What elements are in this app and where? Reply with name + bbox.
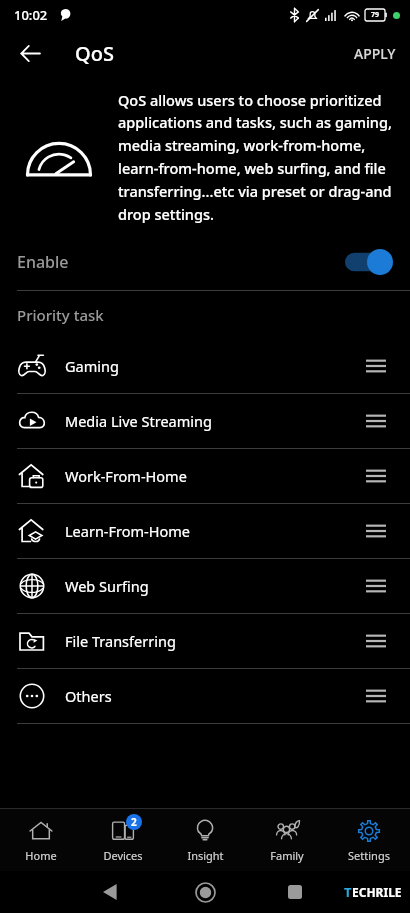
staticText: 10:02 xyxy=(14,6,48,24)
button[interactable]: Family xyxy=(246,809,328,871)
button[interactable]: Learn-From-Home xyxy=(0,504,410,558)
staticText: QoS xyxy=(75,40,114,67)
staticText: ECHRILE xyxy=(352,884,402,900)
staticText: Home xyxy=(25,848,57,863)
button[interactable]: Reorder File Transferring xyxy=(359,624,393,658)
staticText: Media Live Streaming xyxy=(65,411,212,431)
button[interactable]: Reorder Others xyxy=(359,679,393,713)
staticText: Priority task xyxy=(17,305,104,325)
other: Back xyxy=(103,884,119,900)
staticText: Enable xyxy=(17,251,69,273)
button[interactable]: File Transferring xyxy=(0,614,410,668)
staticText: Learn-From-Home xyxy=(65,521,191,541)
staticText: 79 xyxy=(371,10,380,20)
staticText: Web Surfing xyxy=(65,576,149,596)
button[interactable]: Insight xyxy=(164,809,246,871)
staticText: Family xyxy=(270,848,304,863)
button[interactable]: Enable xyxy=(0,234,410,290)
button[interactable]: Gaming xyxy=(0,339,410,393)
button[interactable]: Work-From-Home xyxy=(0,449,410,503)
staticText: 2 xyxy=(131,815,137,829)
button[interactable]: Home xyxy=(0,809,82,871)
button[interactable]: Reorder Media Live Streaming xyxy=(359,404,393,438)
button[interactable]: APPLY xyxy=(340,36,410,71)
staticText: Work-From-Home xyxy=(65,466,187,486)
staticText: Settings xyxy=(348,848,390,863)
staticText: Gaming xyxy=(65,356,119,376)
button[interactable]: Reorder Learn-From-Home xyxy=(359,514,393,548)
button[interactable]: Media Live Streaming xyxy=(0,394,410,448)
button[interactable]: Reorder Work-From-Home xyxy=(359,459,393,493)
button[interactable]: Reorder Gaming xyxy=(359,349,393,383)
staticText: Insight xyxy=(187,848,224,863)
other: Recents xyxy=(288,885,302,899)
button[interactable]: Back xyxy=(12,35,48,71)
staticText: Devices xyxy=(103,848,143,863)
button[interactable]: Others xyxy=(0,669,410,723)
staticText: QoS allows users to choose prioritized a… xyxy=(118,90,398,224)
staticText: T xyxy=(344,883,352,901)
other: Enable QoS xyxy=(345,249,393,275)
other: Home xyxy=(196,883,215,902)
button[interactable]: 2 xyxy=(82,809,164,871)
staticText: Others xyxy=(65,686,112,706)
staticText: APPLY xyxy=(354,44,396,63)
button[interactable]: Web Surfing xyxy=(0,559,410,613)
button[interactable]: Reorder Web Surfing xyxy=(359,569,393,603)
button[interactable]: Settings xyxy=(328,809,410,871)
staticText: File Transferring xyxy=(65,631,176,651)
